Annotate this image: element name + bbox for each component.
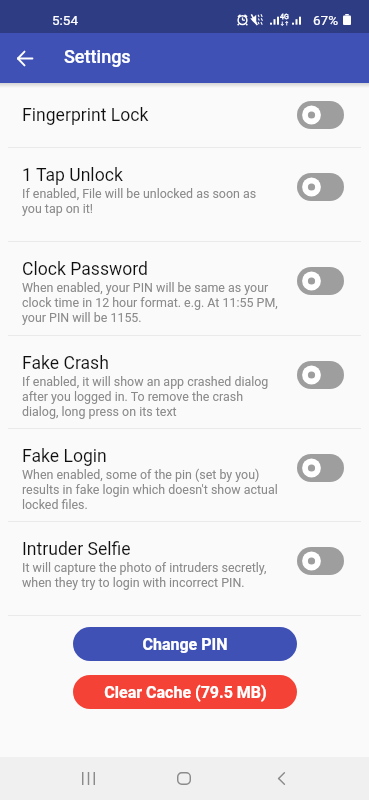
staticText: 4G bbox=[280, 13, 289, 21]
staticText: Settings bbox=[64, 46, 131, 67]
button[interactable]: Fake Crash bbox=[0, 336, 369, 428]
button[interactable]: Toggle bbox=[297, 267, 344, 295]
button[interactable]: Recent apps bbox=[58, 757, 118, 800]
button[interactable]: 1 Tap Unlock bbox=[0, 148, 369, 241]
staticText: Fingerprint Lock bbox=[22, 105, 149, 126]
staticText: Fake Login bbox=[22, 446, 107, 467]
staticText: When enabled, your PIN will be same as y… bbox=[22, 280, 279, 325]
button[interactable]: Fake Login bbox=[0, 429, 369, 521]
button[interactable]: Fingerprint Lock bbox=[0, 83, 369, 147]
staticText: If enabled, File will be unlocked as soo… bbox=[22, 186, 279, 216]
staticText: If enabled, it will show an app crashed … bbox=[22, 374, 279, 419]
button[interactable]: Toggle bbox=[297, 101, 344, 129]
staticText: Fake Crash bbox=[22, 353, 109, 374]
staticText: Change PIN bbox=[142, 635, 228, 654]
staticText: 5:54 bbox=[52, 12, 79, 28]
button[interactable]: Back bbox=[5, 38, 45, 78]
button[interactable]: Toggle bbox=[297, 361, 344, 389]
button[interactable]: Toggle bbox=[297, 547, 344, 575]
button[interactable]: Toggle bbox=[297, 173, 344, 201]
staticText: 1 Tap Unlock bbox=[22, 165, 123, 186]
staticText: Clock Password bbox=[22, 259, 148, 280]
button[interactable]: Toggle bbox=[297, 454, 344, 482]
button[interactable]: Back bbox=[250, 757, 310, 800]
button[interactable]: Intruder Selfie bbox=[0, 522, 369, 615]
staticText: 67% bbox=[313, 12, 339, 28]
button[interactable]: Clear Cache (79.5 MB) bbox=[73, 675, 297, 709]
staticText: Clear Cache (79.5 MB) bbox=[104, 683, 267, 702]
staticText: When enabled, some of the pin (set by yo… bbox=[22, 467, 279, 512]
button[interactable]: Home bbox=[154, 757, 214, 800]
staticText: Intruder Selfie bbox=[22, 539, 131, 560]
staticText: It will capture the photo of intruders s… bbox=[22, 560, 279, 590]
button[interactable]: Change PIN bbox=[73, 627, 297, 661]
button[interactable]: Clock Password bbox=[0, 242, 369, 335]
